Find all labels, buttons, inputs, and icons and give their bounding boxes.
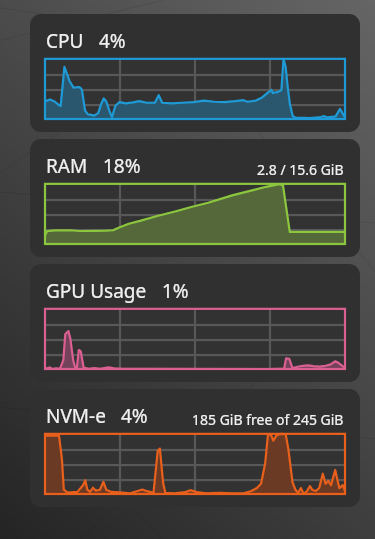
button[interactable]: RAM — [30, 139, 360, 257]
staticText: 1% — [162, 278, 189, 304]
staticText: NVM-e — [46, 403, 106, 429]
staticText: 185 GiB free of 245 GiB — [192, 410, 344, 429]
staticText: CPU — [46, 28, 84, 54]
staticText: 18% — [103, 153, 141, 179]
staticText: RAM — [46, 153, 88, 179]
button[interactable]: GPU Usage — [30, 264, 360, 382]
staticText: GPU Usage — [46, 278, 147, 304]
staticText: 2.8 / 15.6 GiB — [257, 160, 344, 179]
staticText: 4% — [99, 28, 126, 54]
button[interactable]: CPU — [30, 14, 360, 132]
button[interactable]: NVM-e — [30, 389, 360, 507]
staticText: 4% — [121, 403, 148, 429]
